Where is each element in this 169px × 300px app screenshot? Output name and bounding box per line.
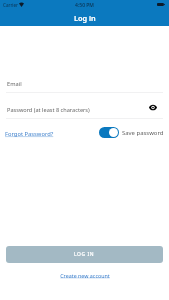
staticText: Carrier — [3, 2, 18, 8]
staticText: Email — [7, 80, 22, 88]
button[interactable]: Forgot Password? — [5, 130, 54, 138]
staticText: 4:50 PM — [75, 2, 94, 9]
button[interactable]: Save password — [99, 127, 164, 138]
staticText: Log in — [74, 13, 96, 23]
staticText: Save password — [122, 129, 164, 137]
button[interactable]: Create new account — [60, 272, 110, 279]
button[interactable]: Show password — [146, 101, 159, 114]
staticText: LOG IN — [74, 251, 95, 258]
button[interactable]: LOG IN — [6, 246, 163, 263]
staticText: Password (at least 8 characters) — [7, 106, 90, 114]
